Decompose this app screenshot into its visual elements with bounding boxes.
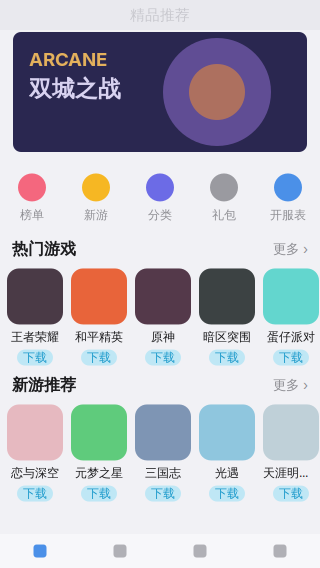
staticText: 更多 › <box>273 241 308 257</box>
button[interactable]: 我的 <box>240 534 320 568</box>
staticText: 暗区突围 <box>203 329 251 344</box>
button[interactable]: 蛋仔派对 <box>263 268 319 365</box>
button[interactable]: 更多 › <box>273 377 308 393</box>
button[interactable]: 原神 <box>135 268 191 365</box>
button[interactable]: 王者荣耀 <box>7 268 63 365</box>
staticText: 下载 <box>215 350 239 365</box>
staticText: 下载 <box>279 486 303 501</box>
staticText: 元梦之星 <box>75 465 123 480</box>
staticText: ARCANE <box>29 48 107 71</box>
staticText: 礼包 <box>212 207 236 222</box>
staticText: 恋与深空 <box>11 465 59 480</box>
button[interactable]: 新游 <box>64 173 128 222</box>
button[interactable]: 榜单 <box>0 173 64 222</box>
staticText: 下载 <box>279 350 303 365</box>
staticText: 分类 <box>148 207 172 222</box>
staticText: 下载 <box>151 350 175 365</box>
staticText: 原神 <box>151 329 175 344</box>
staticText: 王者荣耀 <box>11 329 59 344</box>
staticText: 天涯明月刀 <box>263 465 319 481</box>
staticText: 和平精英 <box>75 329 123 344</box>
button[interactable]: 更多 › <box>273 241 308 257</box>
staticText: 光遇 <box>215 465 239 480</box>
staticText: 下载 <box>151 486 175 501</box>
button[interactable]: 光遇 <box>199 404 255 501</box>
staticText: 下载 <box>87 350 111 365</box>
button[interactable]: 礼包 <box>192 173 256 222</box>
staticText: 开服表 <box>270 207 306 222</box>
button[interactable]: 排行 <box>80 534 160 568</box>
button[interactable]: 暗区突围 <box>199 268 255 365</box>
staticText: 榜单 <box>20 207 44 222</box>
button[interactable]: 分类 <box>128 173 192 222</box>
staticText: 下载 <box>23 486 47 501</box>
staticText: 三国志 <box>145 465 181 480</box>
button[interactable]: 推荐 <box>0 534 80 568</box>
button[interactable]: 和平精英 <box>71 268 127 365</box>
button[interactable]: 发现 <box>160 534 240 568</box>
button[interactable]: 三国志 <box>135 404 191 501</box>
staticText: 新游推荐 <box>12 375 76 395</box>
staticText: 下载 <box>23 350 47 365</box>
staticText: 下载 <box>215 486 239 501</box>
staticText: 更多 › <box>273 377 308 393</box>
button[interactable]: 恋与深空 <box>7 404 63 501</box>
staticText: 下载 <box>87 486 111 501</box>
button[interactable]: ARCANE <box>13 32 307 152</box>
staticText: 新游 <box>84 207 108 222</box>
staticText: 精品推荐 <box>130 6 190 24</box>
staticText: 双城之战 <box>29 75 121 103</box>
button[interactable]: 元梦之星 <box>71 404 127 501</box>
button[interactable]: 开服表 <box>256 173 320 222</box>
staticText: 热门游戏 <box>12 239 76 259</box>
staticText: 蛋仔派对 <box>267 329 315 344</box>
button[interactable]: 天涯明月刀 <box>263 404 319 502</box>
